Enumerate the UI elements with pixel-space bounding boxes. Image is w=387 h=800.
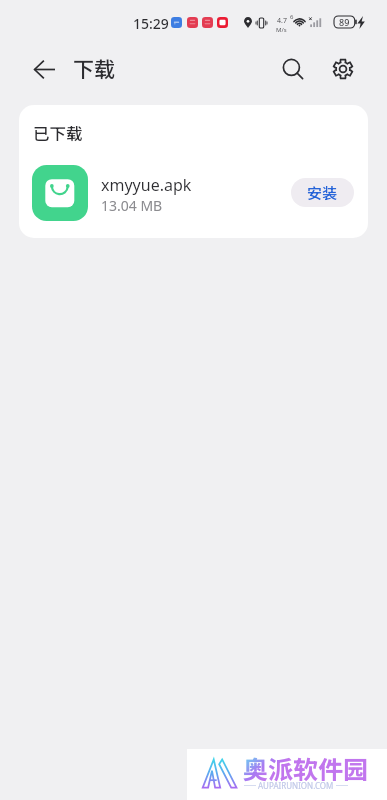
staticText: 奥派软件园 [243, 750, 369, 786]
staticText: 下载 [73, 53, 115, 83]
staticText: 15:29 [133, 14, 169, 33]
button[interactable]: 安装 [291, 178, 354, 207]
staticText: 4.7 [277, 16, 287, 26]
staticText: 13.04 MB [101, 196, 163, 215]
button[interactable]: Search [270, 46, 315, 91]
staticText: xmyyue.apk [101, 174, 192, 196]
button[interactable]: xmyyue.apk [19, 153, 368, 233]
staticText: 89 [339, 16, 350, 28]
staticText: 已下载 [33, 121, 83, 145]
staticText: M/s [276, 26, 287, 34]
staticText: 6 [290, 13, 294, 21]
staticText: 安装 [307, 182, 338, 204]
staticText: AUPAIRUNION.COM [258, 780, 334, 791]
button[interactable]: Settings [320, 46, 365, 91]
button[interactable]: Back [22, 47, 66, 91]
